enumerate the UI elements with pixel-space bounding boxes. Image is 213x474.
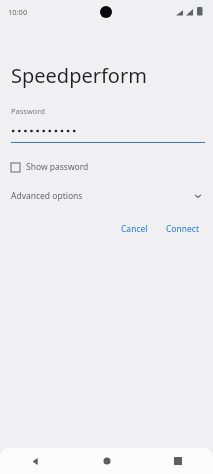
other: Expand advanced options bbox=[191, 189, 205, 203]
button[interactable]: Connect bbox=[160, 219, 205, 239]
staticText: Speedperform bbox=[11, 62, 147, 89]
staticText: Connect bbox=[166, 223, 199, 235]
staticText: Show password bbox=[26, 161, 89, 173]
staticText: 10:00 bbox=[8, 7, 28, 17]
button[interactable]: Back bbox=[0, 448, 71, 474]
staticText: Cancel bbox=[121, 223, 148, 235]
button[interactable]: Advanced options bbox=[11, 187, 205, 205]
button[interactable]: Recent apps bbox=[142, 448, 213, 474]
button[interactable]: Cancel bbox=[115, 219, 154, 239]
button[interactable] bbox=[11, 124, 205, 138]
button[interactable]: Home bbox=[71, 448, 142, 474]
staticText: Password bbox=[11, 106, 45, 116]
button[interactable]: Show password bbox=[11, 158, 205, 176]
staticText: Advanced options bbox=[11, 190, 83, 202]
